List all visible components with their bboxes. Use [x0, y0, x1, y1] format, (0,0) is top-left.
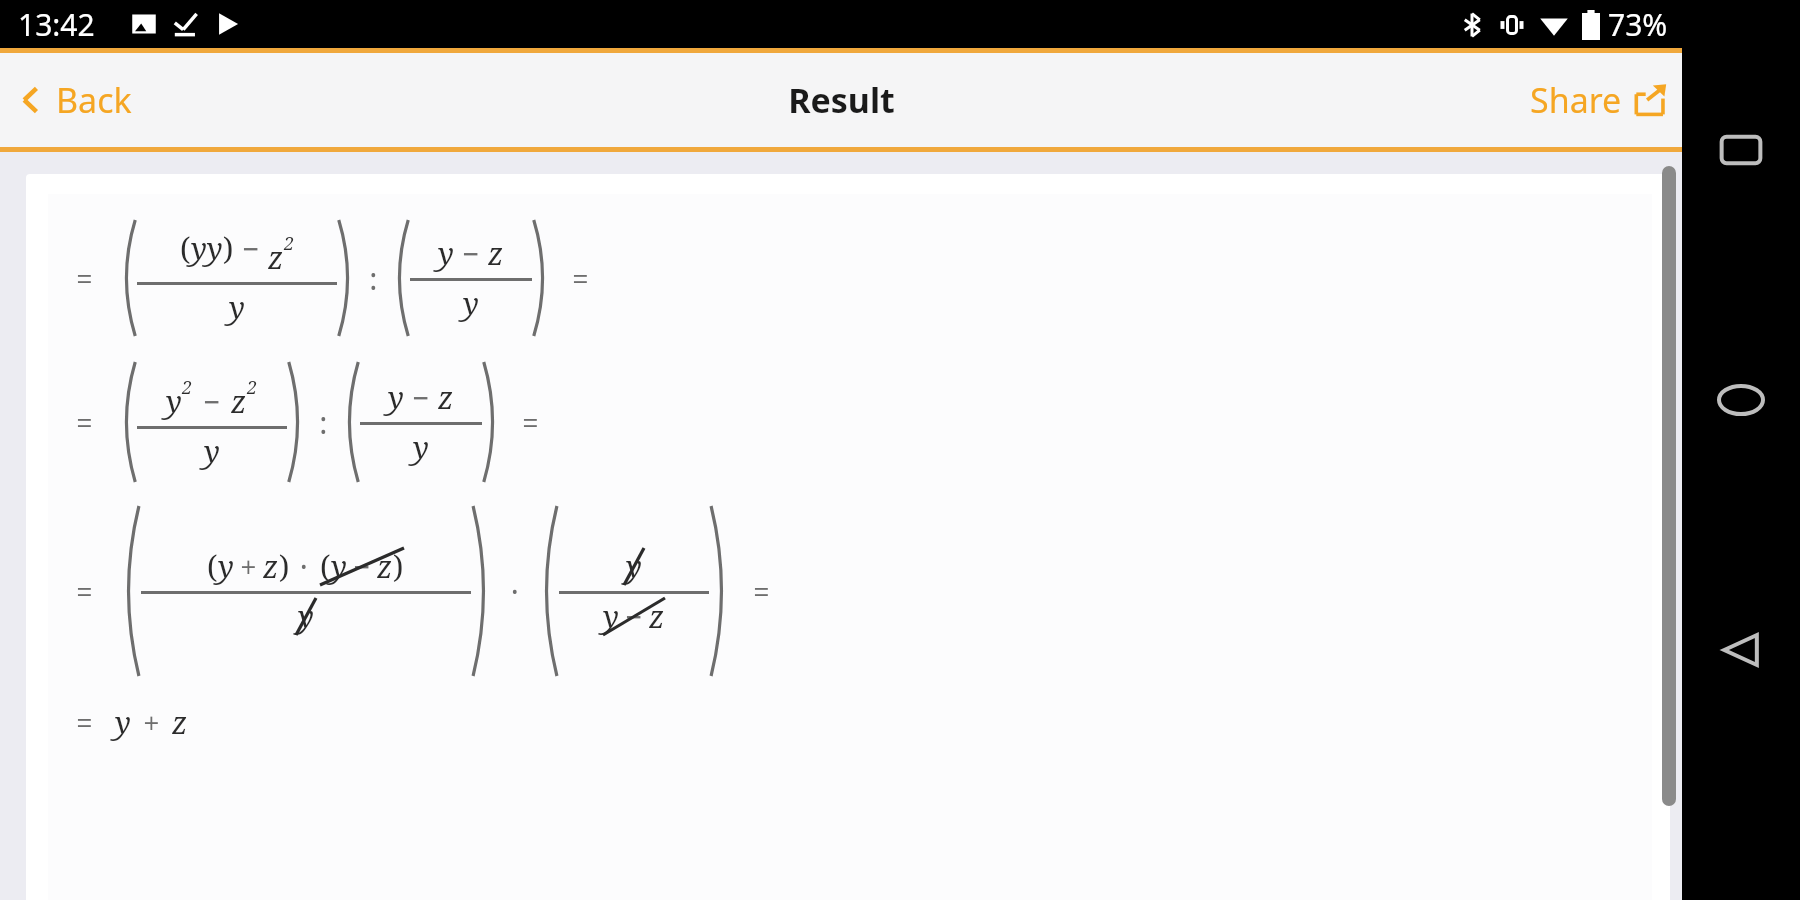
staticText: Share [1530, 77, 1622, 123]
staticText: = [753, 571, 770, 612]
button[interactable]: Home [1701, 360, 1781, 440]
button[interactable]: Share [1512, 67, 1682, 133]
staticText: z [172, 702, 188, 743]
staticText: y [463, 283, 479, 324]
staticText: y [331, 546, 347, 587]
staticText: 73% [1608, 4, 1668, 45]
staticText: − [203, 381, 221, 422]
staticText: Back [56, 77, 132, 123]
staticText: y [229, 287, 245, 328]
staticText: z [438, 377, 454, 418]
button[interactable]: Recents [1701, 110, 1781, 190]
staticText: ) [393, 546, 404, 587]
staticText: ) [223, 228, 234, 269]
staticText: 2 [284, 231, 295, 256]
staticText: y [218, 546, 234, 587]
staticText: z [231, 381, 247, 422]
staticText: y [115, 702, 131, 743]
staticText: ) [279, 546, 290, 587]
staticText: 2 [182, 375, 193, 400]
staticText: z [263, 546, 279, 587]
staticText: : [369, 258, 378, 299]
staticText: − [625, 596, 643, 637]
staticText: − [462, 233, 480, 274]
staticText: z [488, 233, 504, 274]
staticText: = [572, 258, 589, 299]
staticText: ( [180, 228, 191, 269]
button[interactable]: = [26, 174, 1670, 900]
staticText: · [300, 546, 308, 587]
staticText: − [242, 228, 260, 269]
staticText: = [76, 402, 93, 443]
staticText: + [240, 546, 257, 587]
staticText: + [143, 702, 160, 743]
staticText: = [76, 571, 93, 612]
staticText: − [412, 377, 430, 418]
staticText: z [649, 596, 665, 637]
staticText: = [522, 402, 539, 443]
staticText: 13:42 [18, 4, 95, 45]
staticText: y [626, 546, 642, 587]
staticText: = [76, 702, 93, 743]
staticText: · [511, 571, 519, 612]
staticText: y [413, 427, 429, 468]
staticText: y [603, 596, 619, 637]
staticText: : [319, 402, 328, 443]
staticText: y [388, 377, 404, 418]
staticText: 2 [247, 375, 258, 400]
staticText: y [298, 596, 314, 637]
staticText: ( [207, 546, 218, 587]
staticText: Result [788, 77, 895, 123]
staticText: y [166, 381, 182, 422]
button[interactable]: Back [1701, 610, 1781, 690]
staticText: yy [191, 228, 223, 269]
staticText: y [438, 233, 454, 274]
staticText: z [268, 237, 284, 278]
staticText: y [204, 431, 220, 472]
staticText: z [377, 546, 393, 587]
button[interactable]: Back [0, 67, 150, 133]
staticText: − [353, 546, 371, 587]
staticText: = [76, 258, 93, 299]
staticText: ( [320, 546, 331, 587]
